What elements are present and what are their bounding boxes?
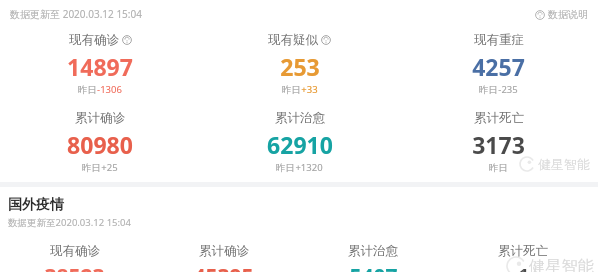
staticText: 累计死亡	[498, 243, 548, 259]
staticText: 累计确诊	[75, 110, 125, 126]
staticText: 昨日	[276, 162, 295, 174]
staticText: -1306	[97, 83, 122, 96]
staticText: 健星智能	[538, 156, 590, 172]
staticText: 14897	[67, 51, 133, 82]
staticText: +1320	[295, 161, 323, 174]
staticText: +33	[301, 83, 318, 96]
staticText: 国外疫情	[8, 196, 64, 214]
other: 说明	[122, 35, 132, 45]
staticText: 累计确诊	[199, 243, 249, 259]
staticText: 数据更新至 2020.03.12 15:04	[10, 7, 142, 21]
button[interactable]: 累计死亡	[448, 243, 598, 272]
staticText: 3173	[472, 129, 525, 160]
staticText: 数据说明	[548, 8, 588, 21]
staticText: 累计治愈	[348, 243, 398, 259]
staticText: 62910	[267, 129, 333, 160]
staticText: 昨日	[489, 162, 508, 174]
other: 说明	[535, 10, 545, 20]
button[interactable]: 现有确诊	[0, 243, 149, 272]
staticText: 昨日	[479, 84, 498, 96]
staticText: 昨日	[78, 84, 97, 96]
staticText: 4257	[472, 51, 525, 82]
staticText: 现有确诊	[69, 32, 119, 48]
button[interactable]: 累计确诊	[149, 243, 298, 272]
staticText: 1	[517, 262, 530, 272]
staticText: 现有重症	[474, 32, 524, 48]
button[interactable]: 说明	[535, 8, 588, 21]
staticText: 数据更新至2020.03.12 15:04	[8, 216, 131, 229]
staticText: +25	[101, 161, 118, 174]
staticText: 昨日	[82, 162, 101, 174]
staticText: 80980	[67, 129, 133, 160]
button[interactable]: 现有疑似	[200, 32, 399, 96]
staticText: -235	[498, 83, 518, 96]
staticText: 累计治愈	[275, 110, 325, 126]
button[interactable]: 现有重症	[399, 32, 598, 96]
staticText: 45395	[193, 262, 254, 272]
button[interactable]: 现有确诊	[0, 32, 200, 96]
button[interactable]: 累计死亡	[399, 110, 598, 174]
staticText: 健星智能	[529, 256, 594, 272]
staticText: 昨日	[282, 84, 301, 96]
other: 说明	[321, 35, 331, 45]
staticText: 累计死亡	[474, 110, 524, 126]
button[interactable]: 累计确诊	[0, 110, 200, 174]
staticText: 5407	[349, 262, 398, 272]
staticText: 现有确诊	[50, 243, 100, 259]
staticText: 现有疑似	[268, 32, 318, 48]
button[interactable]: 累计治愈	[298, 243, 448, 272]
staticText: 253	[280, 51, 320, 82]
button[interactable]: 累计治愈	[200, 110, 399, 174]
staticText: 38523	[44, 262, 105, 272]
